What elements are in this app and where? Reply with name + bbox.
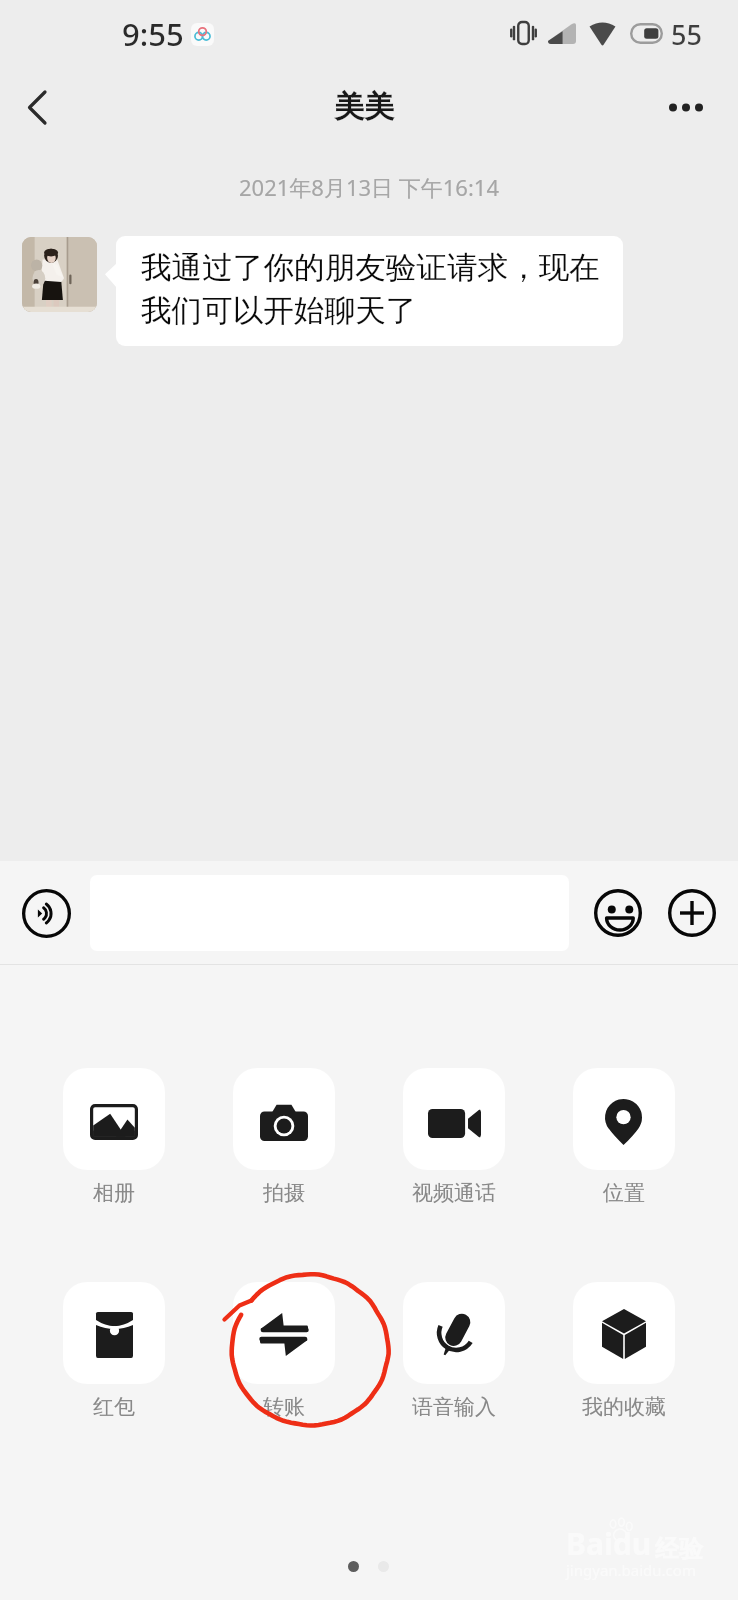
button[interactable]: 拍摄 <box>233 1068 335 1206</box>
button[interactable]: 位置 <box>573 1068 675 1206</box>
button[interactable]: Emoji <box>592 887 644 939</box>
button[interactable]: 视频通话 <box>403 1068 505 1206</box>
button[interactable]: 相册 <box>63 1068 165 1206</box>
staticText: 我的收藏 <box>582 1394 666 1420</box>
staticText: 拍摄 <box>263 1180 305 1206</box>
button[interactable]: Voice message <box>20 887 72 939</box>
staticText: 9:55 <box>122 13 184 55</box>
staticText: 转账 <box>263 1394 305 1420</box>
staticText: 我通过了你的朋友验证请求，现在我们可以开始聊天了 <box>141 249 600 330</box>
staticText: 2021年8月13日 下午16:14 <box>0 172 738 202</box>
staticText: 视频通话 <box>412 1180 496 1206</box>
button[interactable]: Add <box>666 887 718 939</box>
button[interactable]: 语音输入 <box>403 1282 505 1420</box>
staticText: 相册 <box>93 1180 135 1206</box>
button[interactable]: 我的收藏 <box>573 1282 675 1420</box>
staticText: 美美 <box>334 88 394 126</box>
staticText: 语音输入 <box>412 1394 496 1420</box>
staticText: 红包 <box>93 1394 135 1420</box>
staticText: 位置 <box>603 1180 645 1206</box>
button[interactable]: 转账 <box>233 1282 335 1420</box>
button[interactable]: Back <box>8 79 64 135</box>
staticText: 55 <box>671 16 702 53</box>
button[interactable]: More options <box>658 79 714 135</box>
button[interactable]: 红包 <box>63 1282 165 1420</box>
